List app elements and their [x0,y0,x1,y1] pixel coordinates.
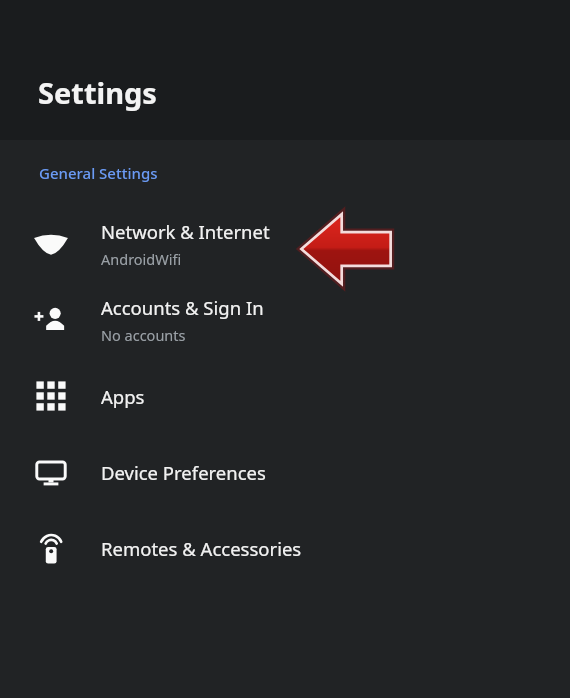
button[interactable]: Device Preferences [0,434,570,510]
staticText: Apps [101,384,145,409]
button[interactable]: Apps [0,358,570,434]
button[interactable]: Accounts [0,282,570,358]
staticText: General Settings [39,163,158,183]
staticText: No accounts [101,325,186,345]
other: Device Preferences [33,454,69,490]
staticText: AndroidWifi [101,249,182,269]
staticText: Network & Internet [101,219,270,244]
staticText: Remotes & Accessories [101,536,302,561]
other: Apps [33,378,69,414]
button[interactable]: Remotes & Accessories [0,510,570,586]
other: Wi-Fi [33,226,69,262]
other: Remotes & Accessories [33,530,69,566]
staticText: Device Preferences [101,460,266,485]
staticText: Accounts & Sign In [101,295,264,320]
button[interactable]: Wi-Fi [0,206,570,282]
staticText: Settings [38,73,157,112]
other: Accounts [33,302,69,338]
